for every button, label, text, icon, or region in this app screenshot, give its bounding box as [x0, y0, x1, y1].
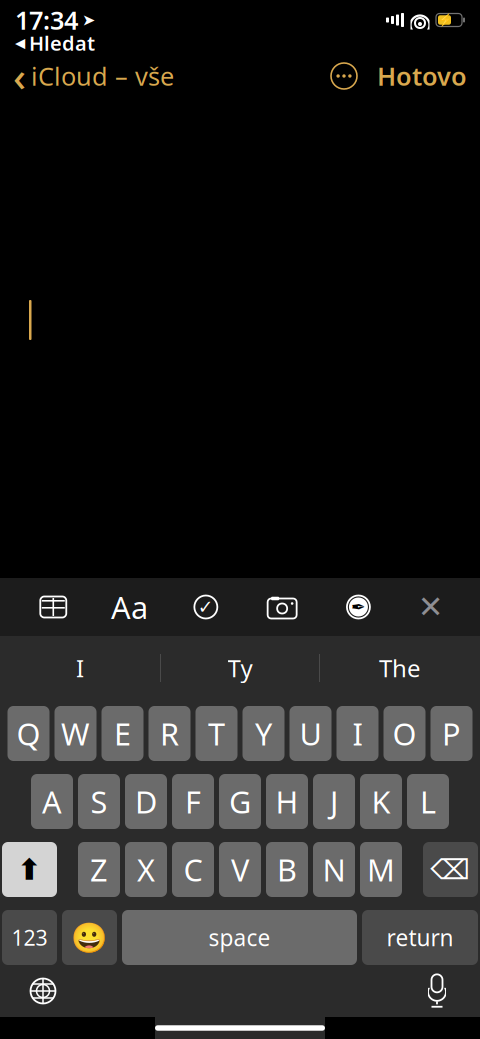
button[interactable]: Markup: [330, 585, 386, 629]
button[interactable]: X: [125, 842, 167, 897]
button[interactable]: S: [78, 774, 120, 829]
staticText: ⬆: [17, 853, 42, 886]
staticText: ‹: [13, 49, 26, 102]
staticText: I: [352, 713, 362, 754]
staticText: ➤: [82, 11, 95, 29]
staticText: F: [185, 781, 201, 822]
button[interactable]: P: [430, 706, 472, 761]
button[interactable]: 123: [2, 910, 57, 965]
staticText: ✕: [418, 590, 444, 624]
button[interactable]: Q: [7, 706, 49, 761]
button[interactable]: Shift: [2, 842, 57, 897]
button[interactable]: O: [383, 706, 425, 761]
staticText: A: [42, 781, 62, 822]
staticText: D: [135, 781, 157, 822]
button[interactable]: V: [219, 842, 261, 897]
button[interactable]: W: [54, 706, 96, 761]
staticText: I: [76, 652, 84, 684]
button[interactable]: Hide toolbar: [407, 585, 455, 629]
button[interactable]: More: [329, 54, 359, 98]
staticText: 123: [11, 923, 47, 952]
button[interactable]: M: [360, 842, 402, 897]
staticText: X: [137, 849, 155, 890]
staticText: Ty: [227, 652, 252, 684]
button[interactable]: A: [31, 774, 73, 829]
staticText: Z: [90, 849, 108, 890]
staticText: Y: [255, 713, 272, 754]
button[interactable]: E: [101, 706, 143, 761]
staticText: ◀: [15, 35, 25, 50]
staticText: W: [61, 713, 90, 754]
button[interactable]: Ty: [161, 642, 319, 694]
staticText: Q: [16, 713, 40, 754]
button[interactable]: Table: [25, 585, 81, 629]
staticText: ✒: [351, 597, 366, 617]
button[interactable]: Dictation: [407, 967, 467, 1015]
button[interactable]: Next keyboard: [13, 967, 73, 1015]
staticText: return: [386, 922, 453, 952]
button[interactable]: Y: [242, 706, 284, 761]
staticText: Hotovo: [377, 59, 467, 93]
button[interactable]: Emoji: [62, 910, 117, 965]
button[interactable]: N: [313, 842, 355, 897]
button[interactable]: I: [336, 706, 378, 761]
button[interactable]: H: [266, 774, 308, 829]
button[interactable]: Delete: [423, 842, 478, 897]
button[interactable]: B: [266, 842, 308, 897]
button[interactable]: The: [320, 642, 480, 694]
staticText: H: [275, 781, 298, 822]
button[interactable]: C: [172, 842, 214, 897]
button[interactable]: space: [122, 910, 357, 965]
button[interactable]: R: [148, 706, 190, 761]
staticText: ⌫: [430, 854, 470, 885]
button[interactable]: J: [313, 774, 355, 829]
staticText: O: [392, 713, 416, 754]
staticText: M: [367, 849, 395, 890]
button[interactable]: ◀: [15, 32, 465, 54]
button[interactable]: T: [195, 706, 237, 761]
button[interactable]: D: [125, 774, 167, 829]
button[interactable]: Camera: [254, 585, 310, 629]
staticText: U: [299, 713, 321, 754]
button[interactable]: G: [219, 774, 261, 829]
staticText: 😀: [71, 921, 108, 954]
staticText: N: [322, 849, 345, 890]
staticText: C: [183, 849, 202, 890]
staticText: K: [371, 781, 390, 822]
staticText: B: [277, 849, 297, 890]
button[interactable]: K: [360, 774, 402, 829]
button[interactable]: L: [407, 774, 449, 829]
button[interactable]: F: [172, 774, 214, 829]
staticText: S: [90, 781, 107, 822]
staticText: ✓: [198, 596, 214, 618]
staticText: iCloud – vše: [31, 59, 174, 93]
staticText: space: [208, 922, 270, 952]
button[interactable]: return: [362, 910, 478, 965]
button[interactable]: Checklist: [178, 585, 234, 629]
button[interactable]: Z: [78, 842, 120, 897]
staticText: ⚡: [437, 13, 452, 27]
button[interactable]: I: [0, 642, 160, 694]
staticText: 17:34: [15, 3, 78, 37]
staticText: The: [379, 652, 421, 684]
staticText: P: [442, 713, 461, 754]
staticText: G: [229, 781, 251, 822]
staticText: Aa: [111, 587, 148, 627]
button[interactable]: U: [289, 706, 331, 761]
staticText: L: [420, 781, 436, 822]
staticText: T: [208, 713, 225, 754]
staticText: V: [231, 849, 249, 890]
staticText: Hledat: [29, 30, 95, 56]
button[interactable]: ‹: [13, 54, 174, 98]
staticText: E: [114, 713, 131, 754]
button[interactable]: Hotovo: [359, 54, 467, 98]
staticText: J: [330, 781, 338, 822]
button[interactable]: Format: [102, 585, 158, 629]
staticText: R: [160, 713, 179, 754]
